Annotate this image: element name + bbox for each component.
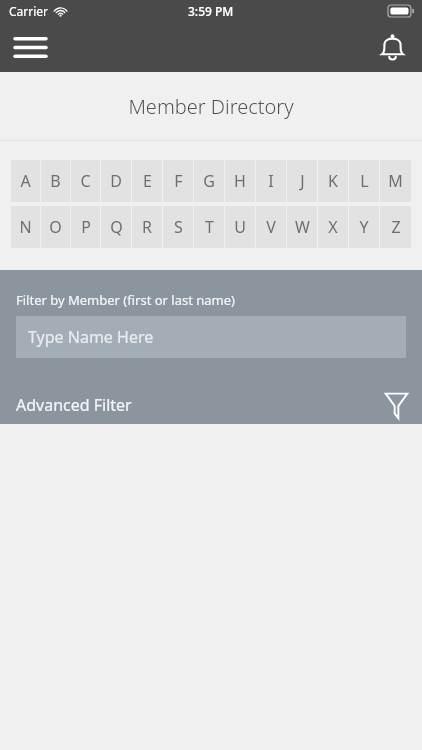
staticText: D — [110, 170, 122, 192]
staticText: O — [49, 216, 62, 238]
staticText: I — [268, 170, 274, 192]
button[interactable]: U — [225, 206, 255, 248]
button[interactable]: P — [71, 206, 100, 248]
button[interactable]: J — [287, 160, 317, 202]
staticText: L — [360, 170, 369, 192]
button[interactable]: D — [101, 160, 131, 202]
staticText: E — [143, 170, 152, 192]
staticText: R — [142, 216, 152, 238]
button[interactable]: H — [225, 160, 255, 202]
button[interactable]: E — [132, 160, 162, 202]
staticText: A — [20, 170, 31, 192]
staticText: M — [388, 170, 403, 192]
button[interactable]: Notifications — [370, 25, 414, 69]
staticText: Y — [359, 216, 369, 238]
button[interactable]: B — [41, 160, 70, 202]
staticText: P — [81, 216, 91, 238]
staticText: V — [266, 216, 276, 238]
button[interactable]: L — [349, 160, 379, 202]
staticText: Type Name Here — [28, 326, 154, 348]
button[interactable]: A — [11, 160, 40, 202]
staticText: Q — [110, 216, 123, 238]
staticText: Filter by Member (first or last name) — [16, 291, 235, 309]
button[interactable]: X — [318, 206, 348, 248]
staticText: F — [174, 170, 183, 192]
staticText: Advanced Filter — [16, 394, 132, 416]
staticText: C — [80, 170, 91, 192]
staticText: U — [234, 216, 246, 238]
staticText: K — [328, 170, 338, 192]
button[interactable]: Q — [101, 206, 131, 248]
button[interactable]: R — [132, 206, 162, 248]
button[interactable]: F — [163, 160, 193, 202]
button[interactable]: Type Name Here — [16, 316, 406, 358]
button[interactable]: I — [256, 160, 286, 202]
staticText: W — [295, 216, 310, 238]
button[interactable]: W — [287, 206, 317, 248]
button[interactable]: N — [11, 206, 40, 248]
staticText: Member Directory — [128, 93, 294, 120]
button[interactable]: S — [163, 206, 193, 248]
staticText: T — [205, 216, 214, 238]
button[interactable]: O — [41, 206, 70, 248]
staticText: Carrier — [9, 3, 49, 19]
button[interactable]: Menu — [8, 25, 52, 69]
button[interactable]: C — [71, 160, 100, 202]
button[interactable]: M — [380, 160, 411, 202]
staticText: N — [19, 216, 32, 238]
button[interactable]: Y — [349, 206, 379, 248]
staticText: J — [300, 170, 305, 192]
staticText: B — [50, 170, 61, 192]
staticText: 3:59 PM — [188, 3, 234, 19]
staticText: X — [328, 216, 338, 238]
button[interactable]: V — [256, 206, 286, 248]
button[interactable]: T — [194, 206, 224, 248]
staticText: S — [174, 216, 183, 238]
button[interactable]: Advanced Filter — [0, 386, 422, 424]
staticText: G — [203, 170, 215, 192]
button[interactable]: Z — [380, 206, 411, 248]
staticText: H — [234, 170, 246, 192]
button[interactable]: G — [194, 160, 224, 202]
staticText: Z — [391, 216, 401, 238]
button[interactable]: K — [318, 160, 348, 202]
